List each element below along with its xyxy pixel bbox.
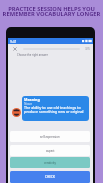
staticText: 9:41 — [10, 39, 17, 44]
staticText: The ability to use old teachings to prod… — [24, 105, 88, 114]
staticText: self-expression — [40, 135, 60, 139]
staticText: 3/5 — [85, 47, 90, 51]
staticText: Meaning — [24, 97, 40, 102]
button[interactable]: Close — [12, 46, 18, 52]
button[interactable]: creativity — [10, 157, 90, 168]
button[interactable]: CHECK — [10, 171, 90, 183]
staticText: Choose the right answer — [17, 53, 48, 57]
button[interactable]: self-expression — [10, 131, 90, 142]
staticText: aspect — [46, 149, 55, 153]
staticText: CHECK — [45, 175, 56, 179]
staticText: Noun — [24, 102, 33, 106]
button[interactable]: aspect — [10, 145, 90, 156]
staticText: creativity — [44, 161, 56, 165]
staticText: PRACTICE SESSION HELPS YOU REMEMBER VOCA… — [0, 5, 103, 18]
